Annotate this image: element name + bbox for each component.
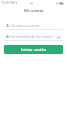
button[interactable]: Usuario o correo	[4, 21, 63, 29]
button[interactable]: Iniciar sesión	[4, 45, 63, 54]
staticText: Usuario o correo	[10, 23, 39, 28]
button[interactable]: Contraseña de tu cuenta	[4, 32, 63, 40]
button[interactable]: Mostrar contraseña	[56, 34, 60, 38]
staticText: Iniciar sesión	[21, 47, 47, 52]
staticText: Mi cuenta	[24, 8, 44, 14]
staticText: 12:45 PM ▾	[1, 1, 18, 5]
staticText: Contraseña de tu cuenta	[10, 34, 53, 39]
